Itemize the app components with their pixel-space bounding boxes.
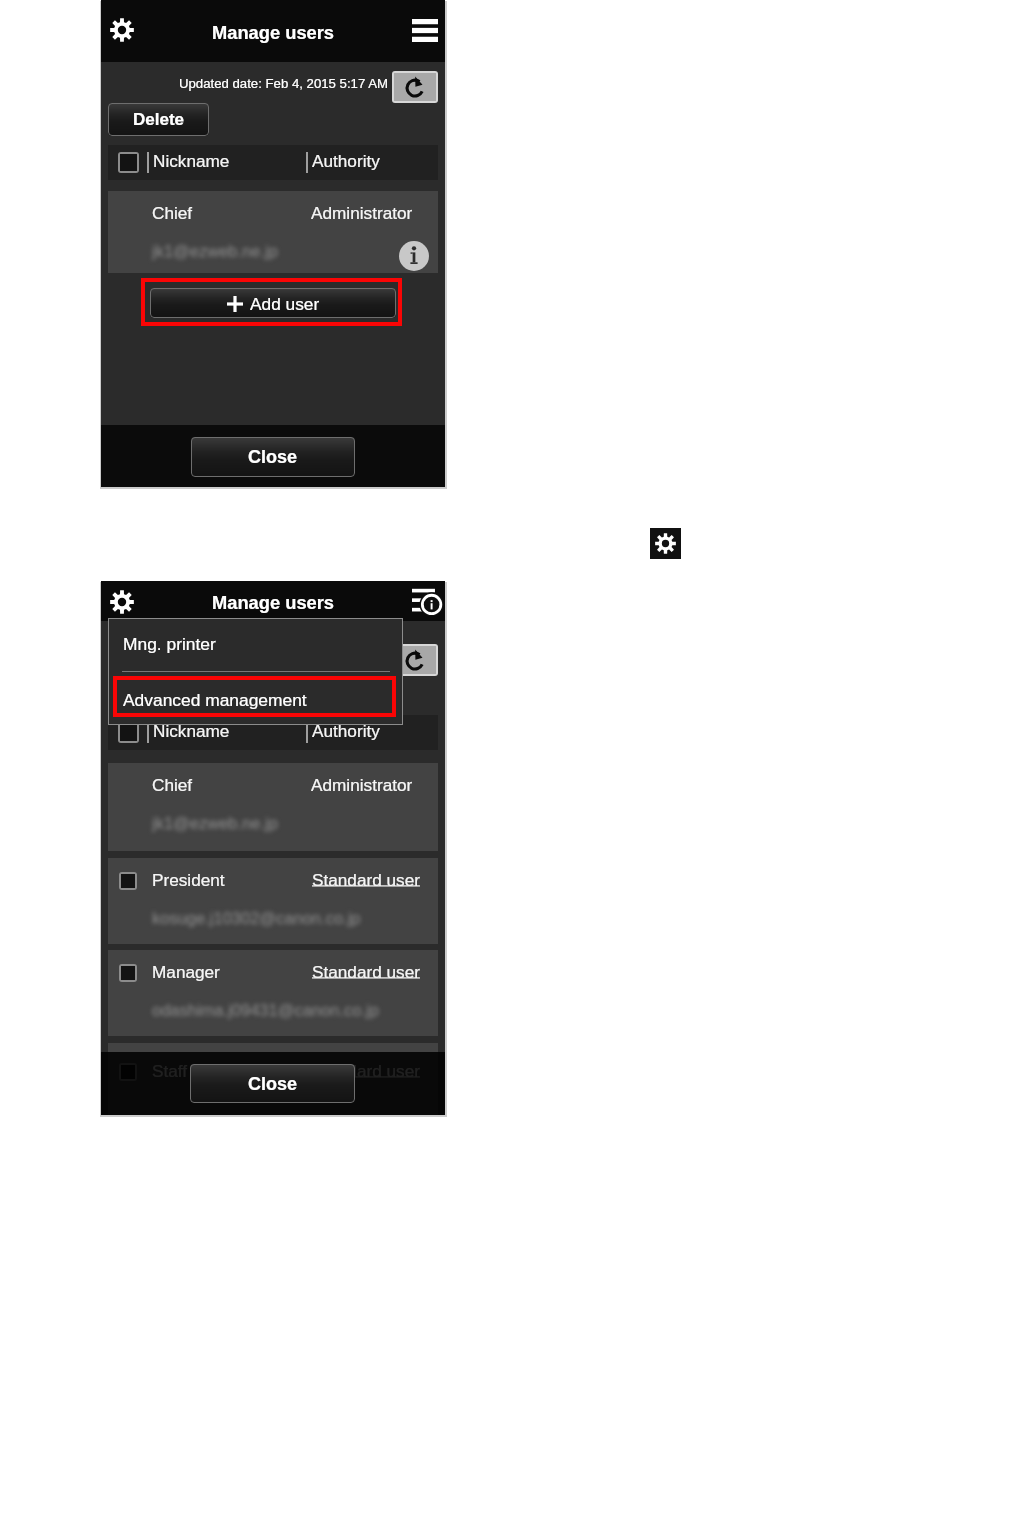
button[interactable]: Close xyxy=(191,437,355,477)
button[interactable]: Close xyxy=(190,1064,355,1103)
button[interactable]: Delete xyxy=(108,103,209,136)
button[interactable]: Select xyxy=(120,724,137,741)
staticText: Administrator xyxy=(311,203,413,222)
staticText: Delete xyxy=(133,110,185,129)
staticText: Add user xyxy=(250,294,320,313)
staticText: Manage users xyxy=(212,22,335,42)
staticText: Close xyxy=(248,447,298,467)
staticText: jk1@ezweb.ne.jp xyxy=(152,242,278,260)
button[interactable]: Refresh xyxy=(394,73,436,101)
staticText: Advanced management xyxy=(123,690,307,709)
button[interactable]: Refresh xyxy=(394,646,436,674)
staticText: Standard user xyxy=(312,962,420,981)
staticText: Chief xyxy=(152,775,193,794)
button[interactable]: Add user xyxy=(150,288,396,318)
button[interactable]: Select xyxy=(108,858,438,944)
button[interactable]: Settings xyxy=(104,584,140,620)
button[interactable]: Advanced management xyxy=(108,672,403,725)
staticText: Standard user xyxy=(312,870,420,889)
button[interactable]: Settings xyxy=(104,12,140,48)
button[interactable]: Chief xyxy=(108,763,438,851)
button[interactable]: Printer information xyxy=(409,583,443,617)
button[interactable]: Select xyxy=(108,950,438,1036)
staticText: Mng. printer xyxy=(123,634,216,653)
staticText: Updated date: Feb 4, 2015 5:17 AM xyxy=(179,76,388,91)
button[interactable]: Info xyxy=(399,241,429,271)
staticText: President xyxy=(152,870,225,889)
button[interactable]: Mng. printer xyxy=(108,618,403,670)
staticText: Manager xyxy=(152,962,220,981)
staticText: kosuge.j10302@canon.co.jp xyxy=(152,909,361,927)
button[interactable]: Chief xyxy=(108,191,438,273)
staticText: Authority xyxy=(312,721,380,740)
staticText: Administrator xyxy=(311,775,413,794)
staticText: Nickname xyxy=(153,721,230,740)
staticText: odashima.j09431@canon.co.jp xyxy=(152,1001,379,1019)
staticText: Staff xyxy=(152,1061,188,1080)
staticText: Standard user xyxy=(312,1061,420,1080)
staticText: Authority xyxy=(312,151,380,170)
staticText: Chief xyxy=(152,203,193,222)
staticText: jk1@ezweb.ne.jp xyxy=(152,814,278,832)
staticText: Nickname xyxy=(153,151,230,170)
staticText: Manage users xyxy=(212,592,335,612)
button[interactable]: Select xyxy=(108,1043,438,1115)
staticText: Close xyxy=(248,1074,298,1094)
button[interactable]: Menu xyxy=(407,12,443,48)
